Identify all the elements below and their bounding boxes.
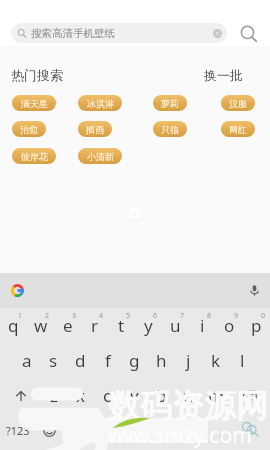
staticText: 治愈: [20, 124, 38, 135]
staticText: 9: [234, 311, 239, 321]
button[interactable]: j: [175, 343, 202, 378]
staticText: a: [22, 349, 32, 372]
staticText: 数码资源网: [108, 386, 268, 426]
button[interactable]: g: [121, 343, 148, 378]
staticText: v: [130, 384, 139, 407]
staticText: s: [49, 349, 58, 372]
staticText: 7: [180, 311, 185, 321]
button[interactable]: 小清新: [78, 148, 122, 164]
button[interactable]: c: [94, 378, 121, 413]
staticText: p: [251, 314, 262, 337]
staticText: 0: [261, 311, 266, 321]
button[interactable]: b: [148, 378, 175, 413]
button[interactable]: 搜索高清手机壁纸: [11, 23, 227, 43]
button[interactable]: Search: [234, 413, 270, 448]
staticText: 小清新: [87, 151, 114, 162]
staticText: i: [200, 314, 205, 337]
button[interactable]: ?123: [0, 413, 36, 448]
staticText: c: [103, 384, 112, 407]
staticText: g: [129, 349, 140, 372]
staticText: ?123: [6, 423, 30, 438]
button[interactable]: 插画: [78, 121, 112, 137]
button[interactable]: Backspace: [229, 378, 270, 413]
staticText: 汉服: [229, 98, 247, 109]
button[interactable]: 满天星: [12, 95, 56, 111]
button[interactable]: w: [27, 308, 54, 343]
button[interactable]: 网红: [221, 121, 255, 137]
staticText: e: [63, 314, 73, 337]
button[interactable]: k: [202, 343, 229, 378]
staticText: d: [75, 349, 86, 372]
button[interactable]: 治愈: [12, 121, 46, 137]
staticText: 冰淇淋: [87, 98, 114, 109]
button[interactable]: v: [121, 378, 148, 413]
staticText: 满天星: [21, 98, 48, 109]
staticText: u: [170, 314, 181, 337]
button[interactable]: Google: [11, 284, 24, 297]
staticText: h: [156, 349, 167, 372]
button[interactable]: Space: [62, 418, 208, 443]
staticText: 2: [45, 311, 50, 321]
staticText: 网红: [229, 124, 247, 135]
staticText: 1: [18, 311, 23, 321]
button[interactable]: 只狼: [153, 121, 187, 137]
button[interactable]: d: [67, 343, 94, 378]
staticText: 8: [207, 311, 212, 321]
button[interactable]: s: [40, 343, 67, 378]
button[interactable]: q: [0, 308, 27, 343]
button[interactable]: Emoji: [36, 413, 62, 448]
button[interactable]: z: [41, 378, 67, 413]
staticText: t: [118, 314, 125, 337]
button[interactable]: a: [14, 343, 40, 378]
staticText: z: [50, 384, 58, 407]
staticText: o: [224, 314, 235, 337]
staticText: 热门搜索: [11, 67, 63, 83]
staticText: 5: [126, 311, 131, 321]
staticText: 换一批: [204, 67, 243, 83]
button[interactable]: f: [94, 343, 121, 378]
button[interactable]: Shift: [0, 378, 41, 413]
button[interactable]: o: [216, 308, 243, 343]
staticText: 3: [72, 311, 77, 321]
button[interactable]: e: [54, 308, 81, 343]
button[interactable]: h: [148, 343, 175, 378]
staticText: q: [8, 314, 19, 337]
button[interactable]: t: [108, 308, 135, 343]
button[interactable]: Clear: [213, 29, 222, 38]
staticText: x: [76, 384, 85, 407]
staticText: y: [144, 314, 153, 337]
button[interactable]: 汉服: [221, 95, 255, 111]
staticText: 彼岸花: [21, 151, 48, 162]
staticText: 插画: [86, 124, 104, 135]
staticText: r: [91, 314, 99, 337]
button[interactable]: Voice input: [248, 284, 261, 297]
staticText: f: [105, 349, 111, 372]
staticText: .: [219, 421, 224, 441]
staticText: 6: [153, 311, 158, 321]
staticText: 搜索高清手机壁纸: [31, 27, 115, 40]
staticText: l: [240, 349, 245, 372]
button[interactable]: m: [202, 378, 229, 413]
button[interactable]: .: [208, 413, 234, 448]
button[interactable]: 彼岸花: [12, 148, 56, 164]
button[interactable]: i: [189, 308, 216, 343]
button[interactable]: r: [81, 308, 108, 343]
staticText: k: [211, 349, 221, 372]
button[interactable]: l: [229, 343, 256, 378]
staticText: www.smzy.com: [100, 421, 252, 450]
staticText: 萝莉: [161, 98, 179, 109]
button[interactable]: 冰淇淋: [78, 95, 122, 111]
staticText: 只狼: [161, 124, 179, 135]
button[interactable]: Search: [234, 19, 262, 47]
button[interactable]: 萝莉: [153, 95, 187, 111]
button[interactable]: y: [135, 308, 162, 343]
staticText: m: [208, 384, 224, 407]
button[interactable]: n: [175, 378, 202, 413]
button[interactable]: 换一批: [204, 67, 243, 83]
staticText: 4: [99, 311, 104, 321]
button[interactable]: p: [243, 308, 270, 343]
button[interactable]: u: [162, 308, 189, 343]
button[interactable]: x: [67, 378, 94, 413]
staticText: n: [183, 384, 194, 407]
staticText: b: [156, 384, 167, 407]
